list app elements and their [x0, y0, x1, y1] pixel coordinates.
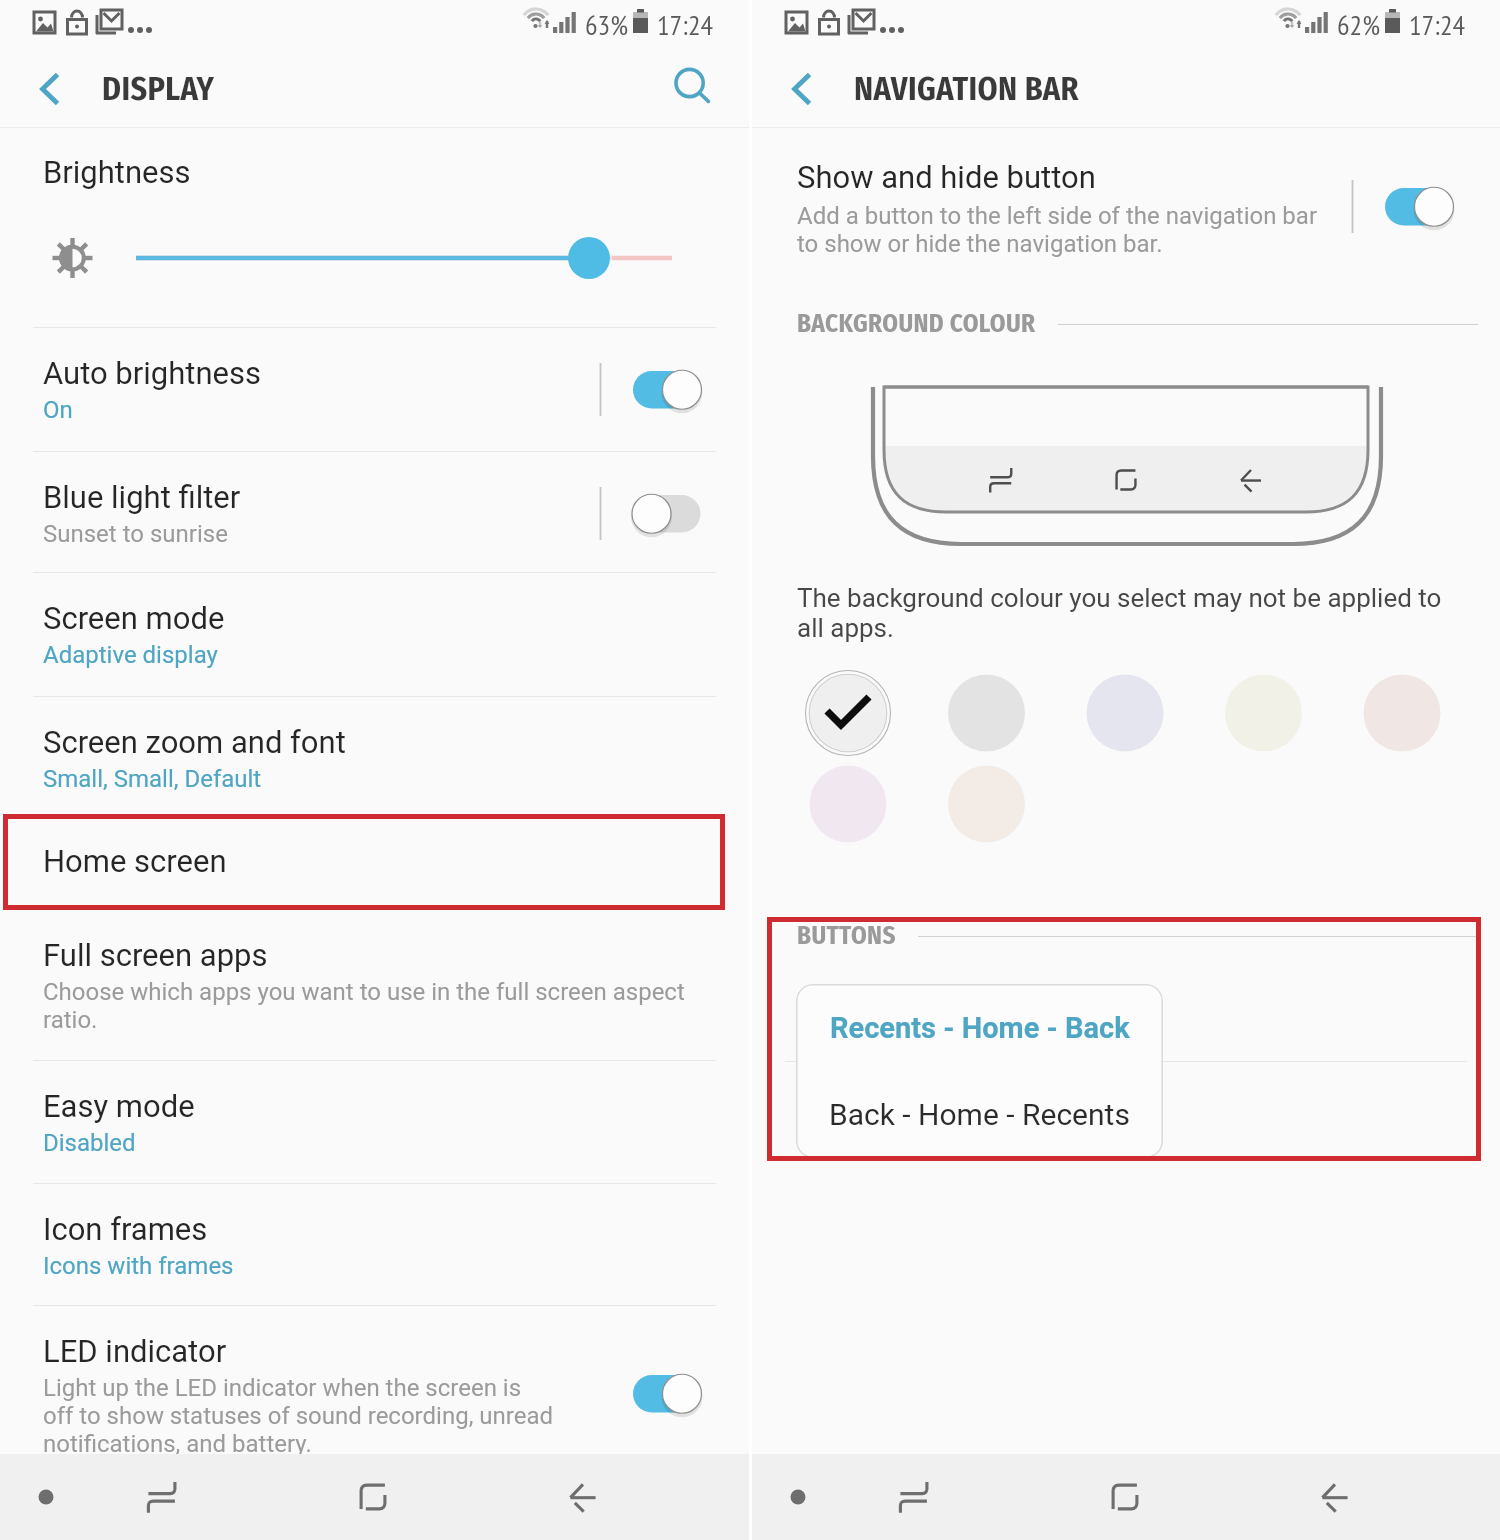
- staticText: Screen mode: [43, 600, 225, 636]
- button[interactable]: Icon frames: [0, 1184, 749, 1306]
- button[interactable]: Screen zoom and font: [0, 697, 749, 816]
- staticText: Recents - Home - Back: [830, 1011, 1130, 1045]
- staticText: DISPLAY: [102, 70, 215, 108]
- button[interactable]: Show and hide button: [752, 128, 1500, 299]
- staticText: Small, Small, Default: [43, 765, 262, 793]
- button[interactable]: Brightness: [0, 128, 749, 328]
- staticText: Blue light filter: [43, 479, 241, 515]
- staticText: Choose which apps you want to use in the…: [43, 978, 685, 1034]
- button[interactable]: Back: [0, 50, 102, 128]
- staticText: Brightness: [43, 154, 191, 190]
- staticText: Full screen apps: [43, 937, 268, 973]
- button[interactable]: [752, 962, 1500, 1062]
- button[interactable]: Full screen apps: [0, 910, 749, 1061]
- button[interactable]: Back: [1292, 1454, 1378, 1540]
- staticText: BACKGROUND COLOUR: [797, 309, 1036, 339]
- staticText: Icons with frames: [43, 1252, 234, 1280]
- button[interactable]: Recents: [119, 1454, 205, 1540]
- staticText: Add a button to the left side of the nav…: [797, 202, 1318, 258]
- staticText: Easy mode: [43, 1088, 195, 1124]
- staticText: Adaptive display: [43, 641, 218, 669]
- staticText: 62%: [1337, 6, 1381, 42]
- staticText: Icon frames: [43, 1211, 208, 1247]
- button[interactable]: Switch on: [599, 343, 719, 437]
- button[interactable]: Auto brightness: [0, 328, 749, 452]
- staticText: 17:24: [1409, 6, 1466, 42]
- button[interactable]: Background colour 6: [806, 762, 890, 846]
- staticText: BUTTONS: [797, 921, 896, 951]
- staticText: Home screen: [43, 843, 227, 879]
- button[interactable]: LED indicator: [0, 1306, 749, 1454]
- staticText: Auto brightness: [43, 355, 261, 391]
- staticText: Light up the LED indicator when the scre…: [43, 1374, 554, 1454]
- button[interactable]: Back: [752, 50, 854, 128]
- button[interactable]: Home screen: [0, 816, 749, 910]
- button[interactable]: Home: [330, 1454, 416, 1540]
- button[interactable]: Recents - Home - Back: [796, 984, 1163, 1071]
- button[interactable]: Switch off: [599, 467, 719, 561]
- button[interactable]: Search: [643, 50, 749, 128]
- staticText: Disabled: [43, 1129, 136, 1157]
- button[interactable]: Switch on: [599, 1347, 719, 1441]
- button[interactable]: [752, 1062, 1500, 1162]
- staticText: Show and hide button: [797, 159, 1096, 195]
- button[interactable]: Blue light filter: [0, 452, 749, 573]
- button[interactable]: Show and hide navigation bar: [755, 1454, 841, 1540]
- staticText: LED indicator: [43, 1333, 227, 1369]
- staticText: NAVIGATION BAR: [854, 70, 1079, 108]
- button[interactable]: Background colour 4: [1222, 671, 1306, 755]
- staticText: Back - Home - Recents: [829, 1097, 1130, 1132]
- staticText: The background colour you select may not…: [797, 583, 1442, 643]
- staticText: Sunset to sunrise: [43, 520, 228, 548]
- button[interactable]: Back - Home - Recents: [796, 1071, 1163, 1158]
- button[interactable]: Screen mode: [0, 573, 749, 697]
- button[interactable]: Show and hide navigation bar: [3, 1454, 89, 1540]
- button[interactable]: Switch on: [1351, 160, 1471, 254]
- button[interactable]: Background colour 3: [1083, 671, 1167, 755]
- button[interactable]: Background colour 2: [945, 671, 1029, 755]
- button[interactable]: Background colour 5: [1360, 671, 1444, 755]
- staticText: On: [43, 396, 73, 424]
- button[interactable]: Recents: [871, 1454, 957, 1540]
- button[interactable]: Easy mode: [0, 1061, 749, 1184]
- staticText: 17:24: [657, 6, 714, 42]
- button[interactable]: Home: [1082, 1454, 1168, 1540]
- staticText: Screen zoom and font: [43, 724, 346, 760]
- staticText: 63%: [585, 6, 629, 42]
- button[interactable]: Back: [540, 1454, 626, 1540]
- button[interactable]: Background colour 7: [945, 762, 1029, 846]
- button[interactable]: Background colour 1: [806, 671, 890, 755]
